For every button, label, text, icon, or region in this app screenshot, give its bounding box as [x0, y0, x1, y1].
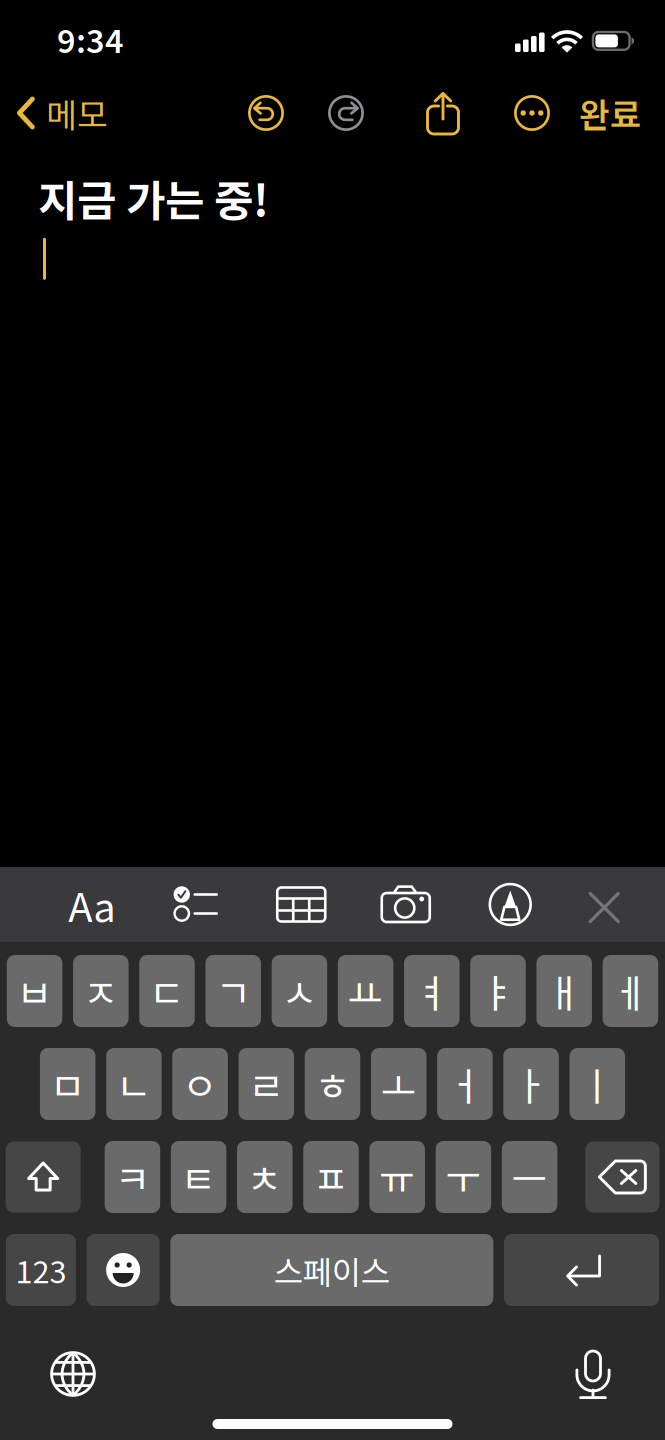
staticText: ㅌ	[181, 1149, 217, 1205]
staticText: 9:34	[57, 16, 124, 62]
staticText: ㅔ	[612, 963, 648, 1019]
button[interactable]: Close	[556, 874, 646, 934]
staticText: 스페이스	[274, 1247, 390, 1293]
staticText: ㅍ	[313, 1149, 349, 1205]
staticText: 완료	[579, 89, 641, 137]
staticText: ㅊ	[247, 1149, 283, 1205]
button[interactable]: ㅑ	[470, 955, 526, 1027]
button[interactable]: 스페이스	[170, 1234, 493, 1306]
button[interactable]: ㄷ	[139, 955, 195, 1027]
button[interactable]: ㅕ	[404, 955, 460, 1027]
staticText: ㄱ	[215, 963, 251, 1019]
button[interactable]: Checklist	[152, 874, 242, 934]
button[interactable]: 완료	[567, 79, 665, 147]
staticText: ㅇ	[182, 1056, 218, 1112]
button[interactable]: ㄱ	[205, 955, 261, 1027]
button[interactable]: ㅇ	[172, 1048, 228, 1120]
button[interactable]: Switch keyboard	[0, 1336, 117, 1412]
staticText: ㅅ	[281, 963, 317, 1019]
button[interactable]: ㅌ	[171, 1141, 226, 1213]
button[interactable]: Shift	[6, 1141, 81, 1212]
button[interactable]: ㅛ	[338, 955, 393, 1027]
button[interactable]: 메모	[0, 81, 120, 145]
staticText: Aa	[68, 875, 116, 933]
button[interactable]: ㅏ	[503, 1048, 559, 1120]
button[interactable]: ㅈ	[73, 955, 129, 1027]
staticText: ㄹ	[248, 1056, 284, 1112]
button[interactable]: Share	[419, 87, 467, 139]
staticText: ㅐ	[546, 963, 582, 1019]
button[interactable]: Dictation	[556, 1336, 665, 1412]
button[interactable]: Camera	[361, 874, 451, 934]
button[interactable]: ㅅ	[272, 955, 327, 1027]
staticText: 지금 가는 중!	[38, 167, 269, 229]
staticText: ㅠ	[379, 1149, 415, 1205]
button[interactable]: ㅠ	[369, 1141, 425, 1213]
staticText: ㅕ	[414, 963, 450, 1019]
button[interactable]: ㅂ	[7, 955, 62, 1027]
staticText: ㅡ	[512, 1149, 548, 1205]
staticText: ㅈ	[83, 963, 119, 1019]
staticText: ㅋ	[114, 1149, 150, 1205]
button[interactable]: Redo	[321, 87, 371, 139]
staticText: ㅂ	[17, 963, 53, 1019]
button[interactable]: Backspace	[585, 1141, 659, 1212]
button[interactable]: ㅣ	[569, 1048, 625, 1120]
button[interactable]: ㅜ	[436, 1141, 491, 1213]
button[interactable]: Emoji	[87, 1234, 160, 1306]
staticText: ㅑ	[480, 963, 516, 1019]
staticText: ㅗ	[381, 1056, 417, 1112]
button[interactable]: More	[507, 87, 557, 139]
button[interactable]: ㄹ	[239, 1048, 294, 1120]
button[interactable]: Markup	[465, 874, 555, 934]
staticText: ㅁ	[50, 1056, 86, 1112]
button[interactable]: ㅎ	[305, 1048, 360, 1120]
button[interactable]: ㅁ	[40, 1048, 95, 1120]
button[interactable]: Undo	[241, 87, 291, 139]
staticText: ㅏ	[513, 1056, 549, 1112]
button[interactable]: Format	[47, 874, 137, 934]
button[interactable]: Table	[256, 874, 346, 934]
button[interactable]: ㅊ	[237, 1141, 292, 1213]
staticText: ㅜ	[445, 1149, 481, 1205]
staticText: ㅓ	[447, 1056, 483, 1112]
staticText: ㅣ	[579, 1056, 615, 1112]
staticText: ㅎ	[314, 1056, 350, 1112]
button[interactable]: ㅋ	[105, 1141, 160, 1213]
button[interactable]: ㅔ	[603, 955, 658, 1027]
button[interactable]: ㄴ	[106, 1048, 162, 1120]
button[interactable]: Return	[504, 1234, 659, 1306]
button[interactable]: ㅗ	[371, 1048, 426, 1120]
staticText: 123	[15, 1248, 66, 1292]
button[interactable]: ㅐ	[536, 955, 592, 1027]
staticText: ㅛ	[348, 963, 384, 1019]
staticText: ㄴ	[116, 1056, 152, 1112]
button[interactable]: ㅓ	[437, 1048, 493, 1120]
staticText: ㄷ	[149, 963, 185, 1019]
button[interactable]: 123	[6, 1234, 76, 1306]
button[interactable]: ㅍ	[303, 1141, 359, 1213]
button[interactable]: ㅡ	[502, 1141, 557, 1213]
staticText: 메모	[46, 89, 108, 137]
